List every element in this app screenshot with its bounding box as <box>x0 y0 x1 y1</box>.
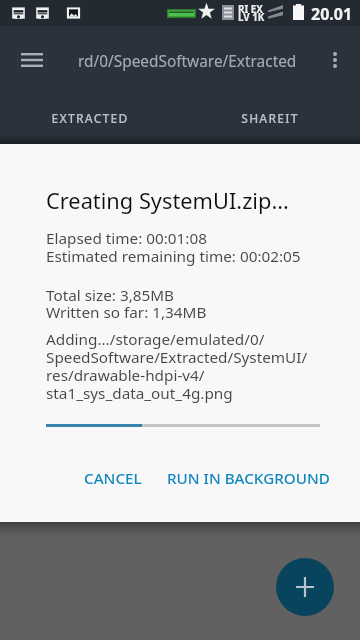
staticText: RUN IN BACKGROUND <box>167 468 330 489</box>
staticText: EXTRACTED <box>51 110 129 126</box>
staticText: Elapsed time: 00:01:08 <box>46 228 207 249</box>
staticText: Adding.../storage/emulated/0/ SpeedSoftw… <box>46 329 308 404</box>
staticText: SHAREIT <box>241 110 299 126</box>
button[interactable]: RUN IN BACKGROUND <box>155 460 342 496</box>
button[interactable]: SHAREIT <box>180 95 360 141</box>
staticText: rd/0/SpeedSoftware/Extracted <box>78 51 297 72</box>
staticText: CANCEL <box>84 468 142 489</box>
button[interactable]: Add <box>276 558 334 616</box>
button[interactable]: More options <box>313 38 357 82</box>
staticText: LV 1K <box>238 11 265 24</box>
staticText: Written so far: 1,34MB <box>46 302 207 323</box>
button[interactable]: CANCEL <box>72 460 154 496</box>
staticText: Total size: 3,85MB <box>46 285 175 306</box>
staticText: Estimated remaining time: 00:02:05 <box>46 246 301 267</box>
button[interactable]: Open navigation drawer <box>10 38 54 82</box>
staticText: 20.01 <box>311 3 353 25</box>
button[interactable]: EXTRACTED <box>0 95 180 141</box>
staticText: Creating SystemUI.zip... <box>46 186 289 216</box>
staticText: RI EX <box>238 3 263 16</box>
